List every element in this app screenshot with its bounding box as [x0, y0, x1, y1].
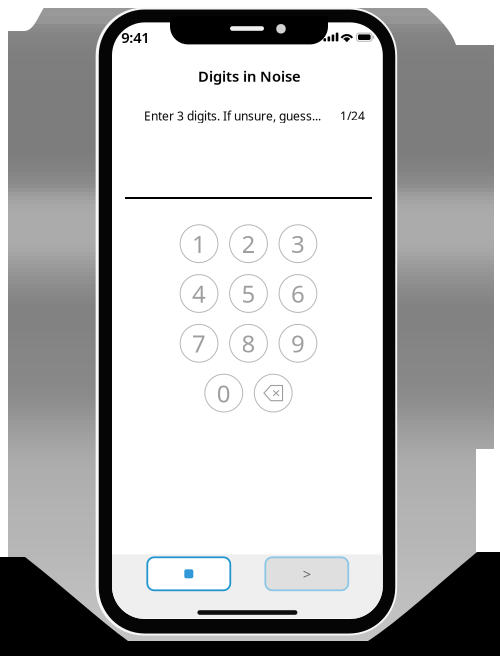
- button[interactable]: 4: [180, 275, 218, 312]
- staticText: 9: [291, 327, 305, 359]
- button[interactable]: 8: [230, 324, 267, 362]
- button[interactable]: Delete: [254, 374, 292, 412]
- staticText: 1/24: [340, 108, 365, 124]
- staticText: 0: [217, 377, 231, 409]
- staticText: 6: [291, 278, 305, 309]
- staticText: 5: [241, 278, 255, 309]
- button[interactable]: 3: [279, 225, 317, 263]
- staticText: 3: [291, 228, 305, 260]
- staticText: Digits in Noise: [198, 66, 301, 86]
- button[interactable]: 9: [279, 324, 317, 362]
- button[interactable]: 2: [230, 225, 267, 263]
- staticText: 8: [241, 327, 255, 359]
- button[interactable]: 6: [279, 275, 317, 312]
- staticText: 4: [192, 278, 206, 309]
- staticText: 1: [192, 228, 206, 260]
- button[interactable]: Stop: [147, 557, 230, 590]
- staticText: >: [303, 564, 311, 584]
- button[interactable]: 1: [180, 225, 218, 263]
- staticText: Enter 3 digits. If unsure, guess...: [144, 108, 321, 124]
- button[interactable]: Next: [265, 557, 348, 590]
- staticText: 7: [192, 327, 206, 359]
- staticText: 9:41: [121, 28, 149, 47]
- button[interactable]: 0: [205, 374, 243, 412]
- button[interactable]: 5: [230, 275, 267, 312]
- staticText: 2: [241, 228, 255, 260]
- button[interactable]: 7: [180, 324, 218, 362]
